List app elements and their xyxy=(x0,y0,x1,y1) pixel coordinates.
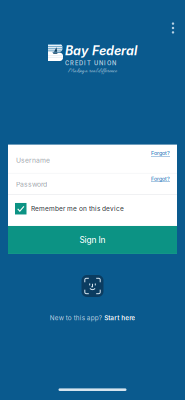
staticText: Start here xyxy=(104,314,135,322)
button[interactable]: Sign In xyxy=(8,226,177,254)
button[interactable]: Sign in with Face ID xyxy=(81,275,103,297)
staticText: Making a real difference xyxy=(68,68,117,75)
staticText: C R E D I T U N I O N xyxy=(65,60,116,67)
button[interactable]: Forgot? xyxy=(145,174,177,186)
staticText: Username xyxy=(16,156,50,164)
button[interactable]: Forgot? xyxy=(145,145,177,160)
staticText: New to this app? xyxy=(50,314,102,322)
staticText: Forgot? xyxy=(151,150,170,156)
staticText: Bay Federal xyxy=(65,43,137,58)
button[interactable]: Menu xyxy=(162,16,184,40)
staticText: Remember me on this device xyxy=(31,205,124,213)
staticText: Forgot? xyxy=(151,175,170,182)
staticText: Password xyxy=(16,180,47,188)
button[interactable]: New to this app? xyxy=(46,310,139,326)
staticText: Sign In xyxy=(79,235,105,245)
button[interactable]: Remember me on this device xyxy=(8,195,177,226)
